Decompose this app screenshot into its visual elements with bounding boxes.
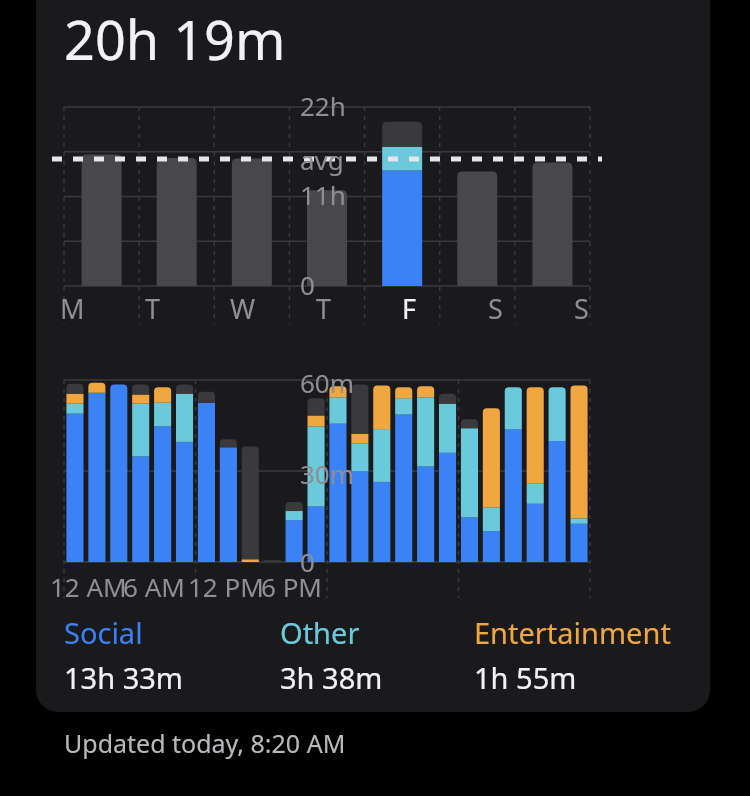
staticText: Entertainment xyxy=(474,613,671,652)
staticText: Other xyxy=(280,613,360,652)
staticText: 12 PM xyxy=(188,569,264,604)
staticText: 60m xyxy=(300,365,355,400)
staticText: 30m xyxy=(300,456,355,491)
button[interactable]: 20h 19m xyxy=(36,0,710,712)
staticText: S xyxy=(488,290,503,327)
staticText: avg xyxy=(300,142,344,177)
staticText: Updated today, 8:20 AM xyxy=(64,726,346,760)
button[interactable]: 60m xyxy=(36,372,710,597)
staticText: 0 xyxy=(300,544,315,579)
button[interactable]: Entertainment xyxy=(474,613,698,697)
staticText: 6 AM xyxy=(123,569,185,604)
staticText: F xyxy=(402,290,417,327)
staticText: 0 xyxy=(300,267,315,302)
staticText: 3h 38m xyxy=(280,658,383,697)
button[interactable]: Social xyxy=(64,613,280,697)
staticText: 20h 19m xyxy=(64,2,286,76)
staticText: Social xyxy=(64,613,143,652)
staticText: M xyxy=(60,290,85,327)
staticText: S xyxy=(574,290,589,327)
staticText: T xyxy=(145,290,161,327)
button[interactable]: 22h xyxy=(36,90,710,330)
staticText: W xyxy=(230,290,256,327)
staticText: 22h xyxy=(300,88,346,123)
staticText: T xyxy=(316,290,332,327)
staticText: 6 PM xyxy=(261,569,322,604)
button[interactable]: Other xyxy=(280,613,474,697)
staticText: 1h 55m xyxy=(474,658,577,697)
staticText: 12 AM xyxy=(50,569,127,604)
staticText: 13h 33m xyxy=(64,658,183,697)
staticText: 11h xyxy=(300,177,346,212)
